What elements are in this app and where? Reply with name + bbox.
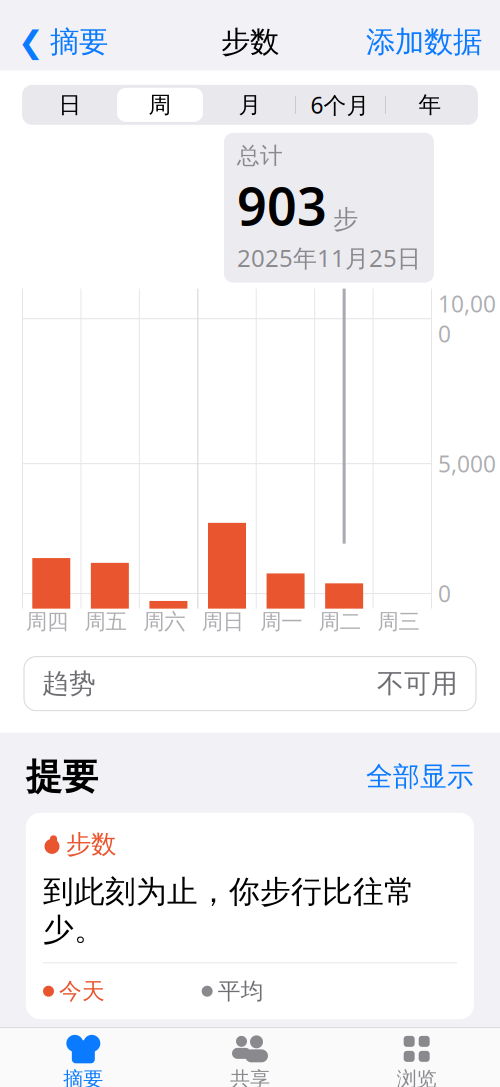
- staticText: 周五: [85, 608, 127, 635]
- staticText: 6个月: [310, 90, 369, 120]
- staticText: 周二: [319, 608, 361, 635]
- button[interactable]: 日: [25, 86, 115, 124]
- button[interactable]: 添加数据: [362, 18, 486, 66]
- staticText: 浏览: [397, 1067, 437, 1087]
- staticText: 日: [58, 91, 81, 119]
- button[interactable]: 年: [385, 86, 475, 124]
- staticText: 0: [438, 578, 451, 609]
- staticText: 提要: [26, 755, 98, 799]
- staticText: 步数: [221, 24, 279, 60]
- staticText: 月: [238, 91, 261, 119]
- staticText: ❮: [18, 24, 44, 59]
- button[interactable]: ❮: [14, 18, 112, 66]
- staticText: 添加数据: [366, 24, 482, 60]
- staticText: 今天: [59, 977, 105, 1005]
- staticText: 2025年11月25日: [237, 242, 421, 274]
- staticText: 周日: [202, 608, 244, 635]
- staticText: 周四: [26, 608, 68, 635]
- staticText: 趋势: [42, 667, 96, 700]
- staticText: 总计: [237, 142, 283, 170]
- button[interactable]: 全部显示: [366, 756, 474, 797]
- staticText: 年: [418, 91, 441, 119]
- staticText: 5,000: [438, 449, 496, 479]
- staticText: 周六: [143, 608, 185, 635]
- button[interactable]: 月: [205, 86, 295, 124]
- button[interactable]: 共享: [167, 1027, 333, 1087]
- staticText: 不可用: [377, 667, 458, 700]
- staticText: 到此刻为止，你步行比往常少。: [43, 873, 415, 948]
- staticText: 周一: [260, 608, 302, 635]
- button[interactable]: 周: [115, 86, 205, 124]
- staticText: 步数: [66, 829, 116, 860]
- button[interactable]: 摘要: [0, 1027, 167, 1087]
- staticText: 周三: [377, 608, 419, 635]
- staticText: 周: [148, 91, 171, 119]
- staticText: 全部显示: [366, 760, 474, 793]
- staticText: 平均: [218, 977, 264, 1005]
- staticText: 摘要: [50, 24, 108, 60]
- staticText: 共享: [230, 1067, 270, 1087]
- staticText: 10,000: [438, 289, 496, 349]
- staticText: 步: [333, 204, 358, 235]
- button[interactable]: 趋势: [24, 657, 476, 711]
- staticText: 摘要: [63, 1067, 103, 1087]
- staticText: 903: [237, 171, 327, 240]
- button[interactable]: 浏览: [333, 1027, 500, 1087]
- button[interactable]: 6个月: [295, 86, 385, 124]
